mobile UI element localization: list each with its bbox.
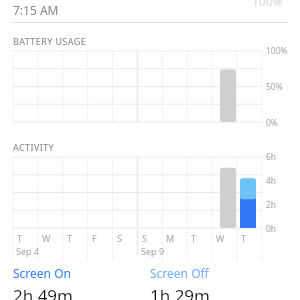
staticText: 2h	[266, 199, 277, 211]
staticText: T	[191, 232, 197, 244]
staticText: 7:15 AM	[13, 2, 59, 18]
staticText: T	[17, 232, 23, 244]
staticText: 50%	[266, 81, 283, 93]
staticText: 6h	[266, 151, 277, 163]
staticText: ACTIVITY	[13, 141, 55, 153]
staticText: S	[117, 232, 122, 244]
staticText: F	[92, 232, 97, 244]
staticText: 0%	[266, 117, 278, 129]
staticText: BATTERY USAGE	[13, 35, 87, 47]
staticText: M	[166, 232, 175, 244]
staticText: 4h	[266, 175, 277, 187]
staticText: 2h 49m	[13, 284, 73, 300]
staticText: S	[142, 232, 147, 244]
staticText: Sep 9	[141, 245, 165, 257]
staticText: W	[42, 232, 51, 244]
staticText: 100%	[266, 45, 288, 57]
staticText: 0h	[266, 223, 277, 235]
staticText: Screen On	[13, 265, 71, 281]
staticText: 1h 29m	[150, 284, 210, 300]
staticText: T	[67, 232, 73, 244]
staticText: Sep 4	[16, 245, 40, 257]
button[interactable]	[0, 157, 300, 229]
staticText: Screen Off	[150, 265, 209, 281]
staticText: 100%	[252, 0, 283, 9]
button[interactable]: Screen On	[13, 265, 143, 300]
staticText: W	[216, 232, 225, 244]
staticText: T	[241, 232, 247, 244]
button[interactable]	[0, 51, 300, 123]
button[interactable]: Screen Off	[150, 265, 280, 300]
